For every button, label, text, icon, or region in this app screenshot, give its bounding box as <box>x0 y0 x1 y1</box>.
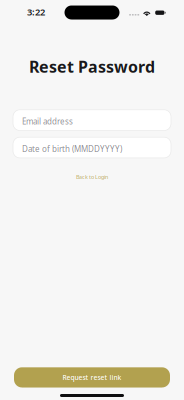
staticText: Email address <box>22 116 73 127</box>
staticText: Date of birth (MMDDYYYY) <box>22 143 122 154</box>
button[interactable]: Back to Login <box>68 171 116 183</box>
button[interactable]: Email address <box>0 110 184 130</box>
staticText: 3:22 <box>27 6 45 18</box>
button[interactable]: Request reset link <box>0 367 184 387</box>
button[interactable]: Date of birth (MMDDYYYY) <box>0 137 184 158</box>
staticText: Reset Password <box>29 56 155 77</box>
staticText: Back to Login <box>76 173 108 180</box>
staticText: Request reset link <box>62 373 121 382</box>
